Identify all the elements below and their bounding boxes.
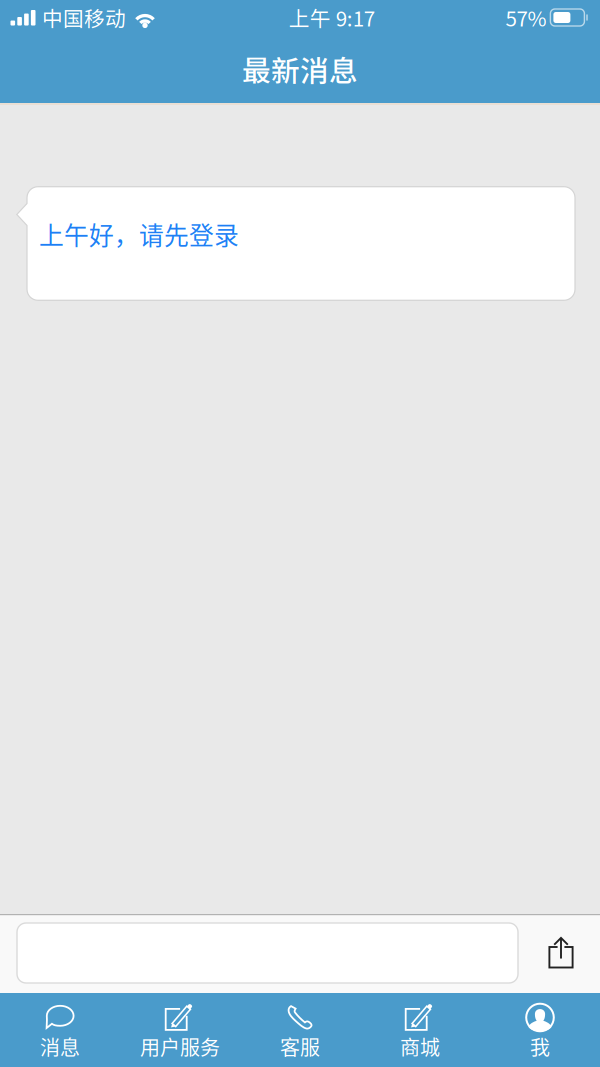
button[interactable]: 我: [480, 993, 600, 1067]
staticText: 57%: [505, 2, 546, 32]
button[interactable]: 用户服务: [120, 993, 240, 1067]
button[interactable]: Message input field: [17, 923, 518, 983]
button[interactable]: 上午好，请先登录: [16, 186, 576, 301]
staticText: 最新消息: [242, 48, 358, 90]
button[interactable]: Share: [532, 922, 590, 984]
button[interactable]: 商城: [360, 993, 480, 1067]
staticText: 商城: [400, 1032, 440, 1061]
staticText: 用户服务: [140, 1032, 220, 1061]
staticText: 我: [530, 1032, 550, 1061]
staticText: 客服: [280, 1032, 320, 1061]
staticText: 中国移动: [42, 2, 126, 32]
button[interactable]: 消息: [0, 993, 120, 1067]
staticText: 消息: [40, 1032, 80, 1061]
staticText: 上午 9:17: [289, 2, 375, 32]
button[interactable]: 客服: [240, 993, 360, 1067]
staticText: 上午好，请先登录: [39, 216, 239, 252]
